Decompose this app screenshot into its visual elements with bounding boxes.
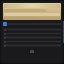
button[interactable]: Play xyxy=(3,22,7,26)
button[interactable] xyxy=(3,32,61,35)
button[interactable] xyxy=(3,36,61,39)
button[interactable] xyxy=(3,28,61,31)
button[interactable] xyxy=(3,40,61,43)
button[interactable] xyxy=(3,44,61,47)
button[interactable] xyxy=(3,3,61,20)
